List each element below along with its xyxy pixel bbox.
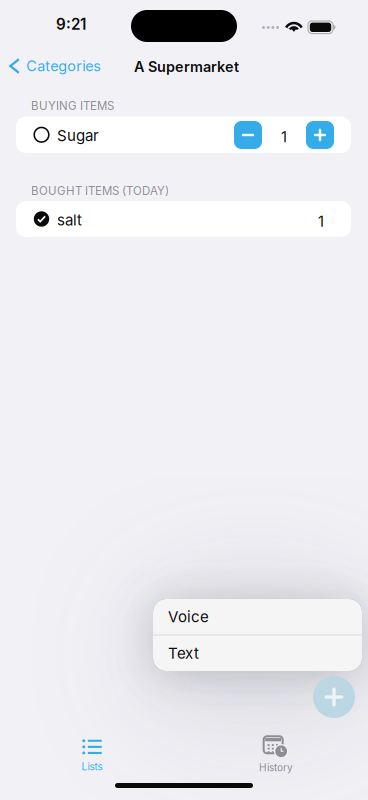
button[interactable]: Mark Sugar as bought (25, 116, 58, 153)
staticText: Voice (168, 608, 209, 626)
staticText: History (259, 761, 293, 774)
button[interactable]: Decrease quantity (234, 121, 262, 149)
staticText: Sugar (57, 126, 99, 145)
staticText: A Supermarket (134, 58, 239, 75)
staticText: Lists (81, 760, 102, 773)
staticText: Text (168, 644, 199, 662)
staticText: 1 (318, 212, 324, 230)
button[interactable]: Mark salt as not bought (25, 201, 58, 237)
button[interactable]: Add item (313, 676, 355, 718)
button[interactable]: History (216, 734, 336, 776)
button[interactable]: Text (153, 635, 362, 671)
button[interactable]: Lists (32, 736, 152, 776)
staticText: 9:21 (56, 15, 86, 33)
button[interactable]: Categories (5, 50, 109, 82)
staticText: salt (57, 211, 82, 229)
button[interactable]: Increase quantity (306, 121, 334, 149)
staticText: Categories (26, 57, 101, 75)
staticText: BOUGHT ITEMS (TODAY) (31, 184, 169, 198)
button[interactable]: Voice (153, 599, 362, 635)
staticText: BUYING ITEMS (31, 99, 114, 113)
staticText: 1 (281, 128, 287, 146)
